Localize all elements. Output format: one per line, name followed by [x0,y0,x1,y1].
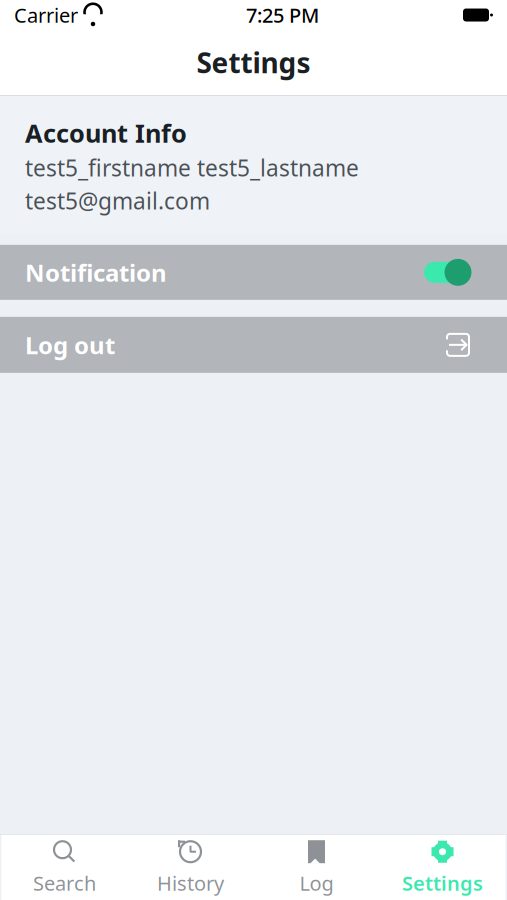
button[interactable]: Settings [379,835,505,900]
staticText: Carrier [14,2,78,28]
staticText: Account Info [25,116,187,150]
staticText: Notification [25,256,167,288]
button[interactable]: Search [1,835,127,900]
staticText: Settings [196,44,310,81]
staticText: test5_firstname test5_lastname [25,153,359,183]
staticText: Settings [402,870,483,896]
button[interactable]: Log [253,835,379,900]
staticText: Log out [25,329,115,361]
button[interactable]: History [127,835,253,900]
button[interactable]: Log out [0,317,507,373]
staticText: test5@gmail.com [25,186,210,216]
staticText: 7:25 PM [246,2,319,28]
staticText: History [157,870,224,896]
staticText: Search [33,870,96,896]
button[interactable]: Notification [0,245,507,300]
staticText: Log [299,870,333,896]
